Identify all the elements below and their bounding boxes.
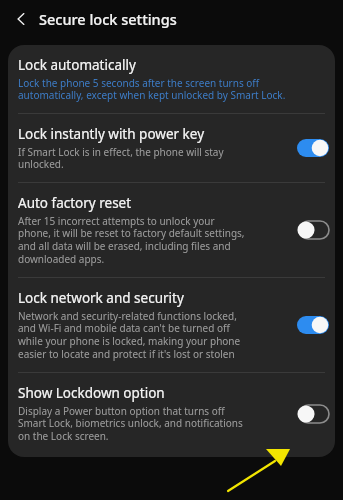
staticText: If Smart Lock is in effect, the phone wi…	[18, 145, 224, 171]
staticText: Lock automatically	[18, 56, 136, 74]
staticText: Lock the phone 5 seconds after the scree…	[18, 76, 286, 102]
button[interactable]: Show Lockdown option	[8, 373, 335, 457]
staticText: After 15 incorrect attempts to unlock yo…	[18, 214, 245, 266]
staticText: Lock instantly with power key	[18, 125, 205, 143]
button[interactable]: Lock instantly with power key	[8, 114, 335, 182]
staticText: Secure lock settings	[39, 9, 177, 29]
button[interactable]: Lock automatically	[8, 45, 335, 113]
button[interactable]: Lock network and security	[8, 278, 335, 372]
staticText: Display a Power button option that turns…	[18, 404, 243, 443]
button[interactable]: Toggle off	[297, 405, 329, 423]
staticText: Lock network and security	[18, 289, 184, 307]
button[interactable]: Toggle off	[297, 221, 329, 239]
button[interactable]: Back	[10, 8, 32, 30]
button[interactable]: Toggle on	[297, 139, 329, 157]
staticText: Auto factory reset	[18, 194, 132, 212]
staticText: Show Lockdown option	[18, 384, 165, 402]
button[interactable]: Auto factory reset	[8, 183, 335, 277]
staticText: Network and security-related functions l…	[18, 309, 241, 361]
button[interactable]: Toggle on	[297, 316, 329, 334]
